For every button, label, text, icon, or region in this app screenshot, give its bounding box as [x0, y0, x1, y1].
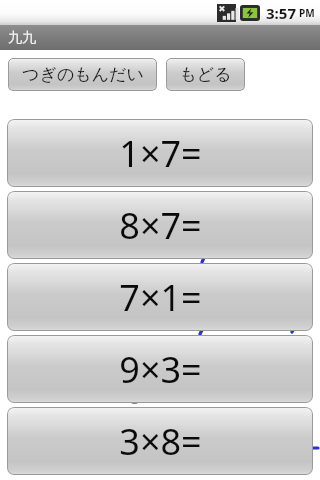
staticText: 九九	[8, 29, 36, 47]
staticText: 8×7=	[119, 201, 202, 250]
button[interactable]: 3×8=	[7, 407, 313, 475]
staticText: 1×7=	[119, 129, 202, 178]
button[interactable]: もどる	[166, 58, 245, 91]
button[interactable]: 9×3=	[7, 335, 313, 403]
staticText: 3:57	[266, 3, 296, 23]
button[interactable]: 1×7=	[7, 119, 313, 187]
staticText: もどる	[179, 64, 232, 85]
staticText: つぎのもんだい	[22, 64, 144, 85]
staticText: 3×8=	[119, 417, 202, 466]
button[interactable]: 7×1=	[7, 263, 313, 331]
staticText: PM	[299, 6, 315, 20]
staticText: 7×1=	[119, 273, 202, 322]
staticText: 9×3=	[119, 345, 202, 394]
button[interactable]: 8×7=	[7, 191, 313, 259]
button[interactable]: つぎのもんだい	[8, 58, 157, 91]
